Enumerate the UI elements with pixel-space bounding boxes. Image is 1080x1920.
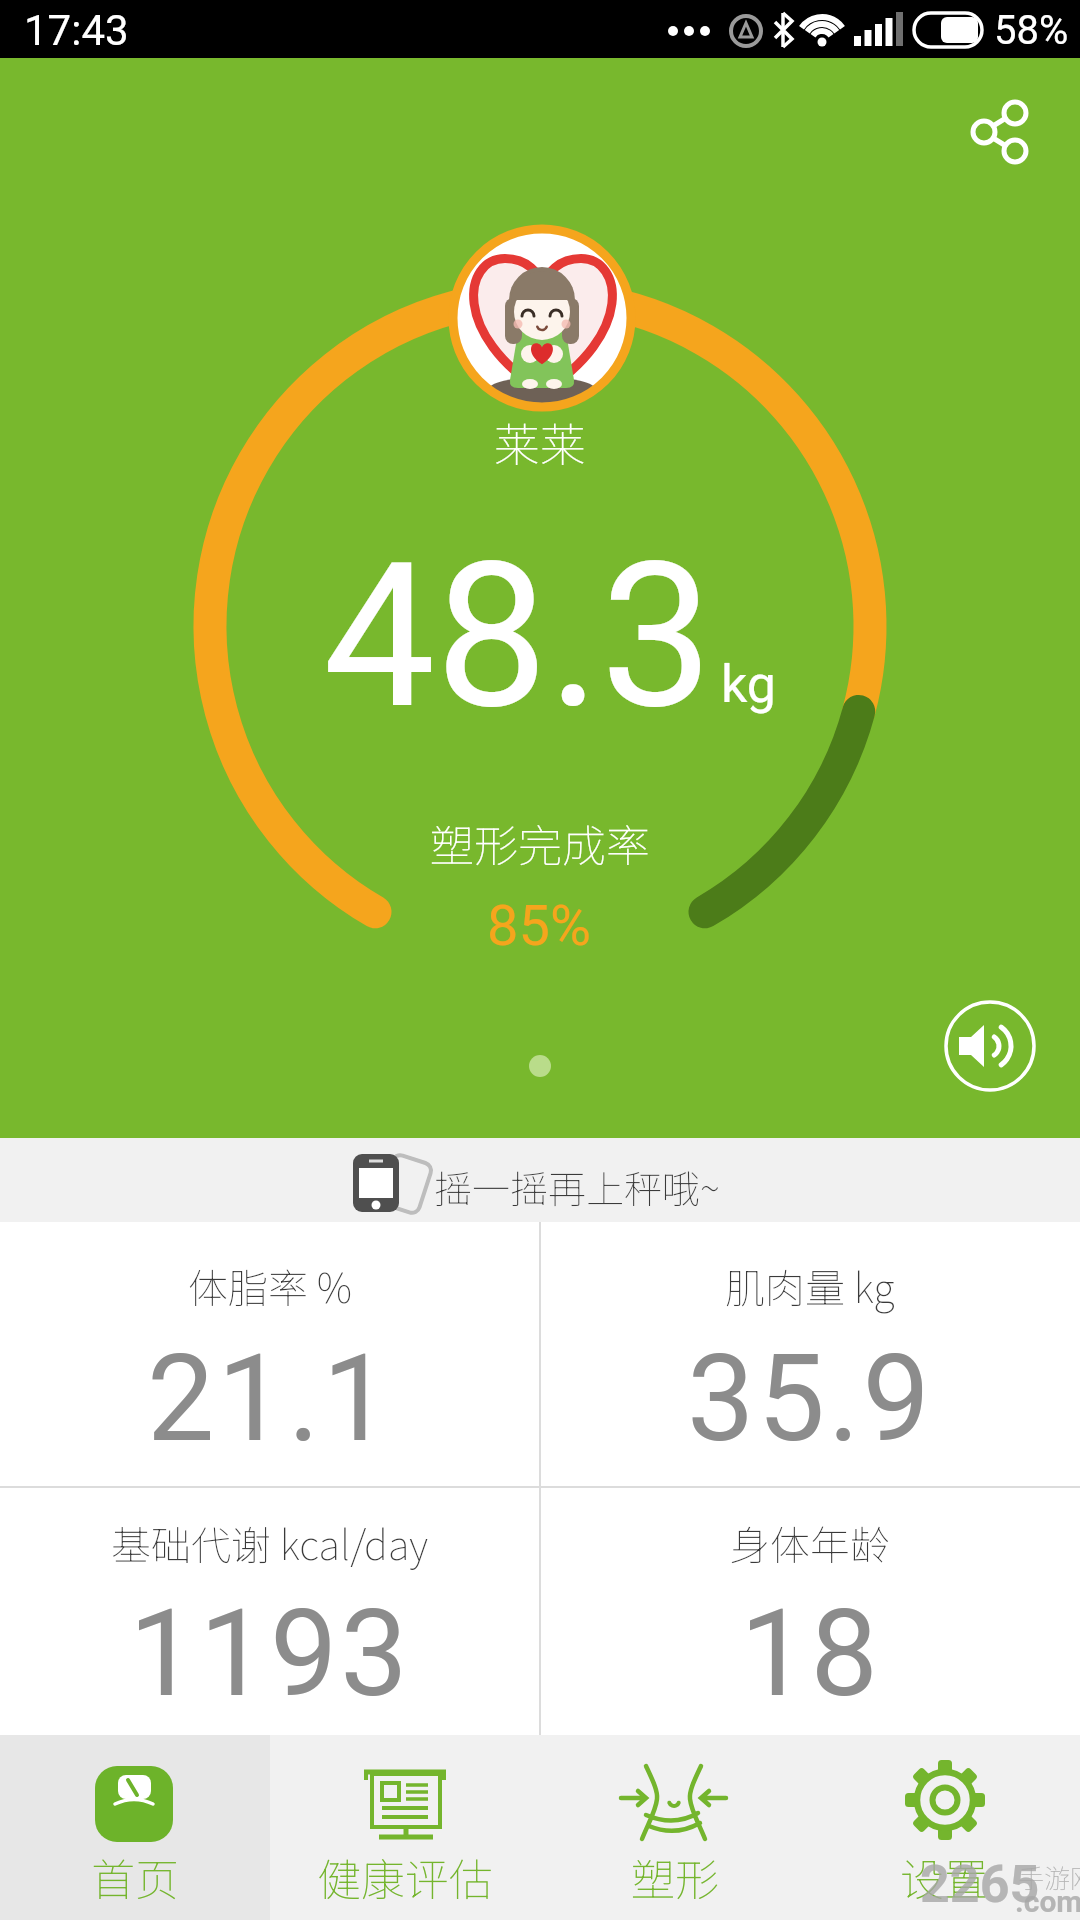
staticText: 塑形 bbox=[631, 1845, 719, 1909]
staticText: 莱莱 bbox=[494, 409, 586, 476]
staticText: 2265 bbox=[920, 1854, 1040, 1915]
staticText: 1193 bbox=[129, 1584, 411, 1725]
button[interactable] bbox=[270, 1735, 540, 1920]
staticText: 身体年龄 bbox=[730, 1514, 890, 1572]
button[interactable] bbox=[540, 1735, 810, 1920]
button[interactable] bbox=[0, 1735, 270, 1920]
staticText: .com bbox=[1015, 1884, 1080, 1919]
button[interactable] bbox=[0, 1138, 1080, 1222]
staticText: 健康评估 bbox=[317, 1845, 493, 1909]
staticText: kg bbox=[721, 654, 777, 715]
staticText: 手游网 bbox=[1018, 1858, 1080, 1896]
staticText: 摇一摇再上秤哦~ bbox=[434, 1159, 720, 1214]
staticText: 85% bbox=[487, 893, 591, 959]
staticText: 48.3 bbox=[323, 519, 713, 753]
staticText: 基础代谢 kcal/day bbox=[111, 1514, 429, 1572]
staticText: 设置 bbox=[900, 1845, 988, 1909]
staticText: 肌肉量 kg bbox=[725, 1257, 895, 1315]
staticText: 首页 bbox=[91, 1845, 179, 1909]
button[interactable] bbox=[810, 1735, 1080, 1920]
staticText: 35.9 bbox=[687, 1329, 933, 1470]
staticText: 58% bbox=[994, 7, 1069, 54]
staticText: 体脂率 % bbox=[188, 1257, 352, 1315]
staticText: 17:43 bbox=[24, 6, 129, 52]
staticText: 塑形完成率 bbox=[430, 811, 650, 875]
button[interactable] bbox=[930, 990, 1042, 1102]
staticText: 18 bbox=[740, 1584, 881, 1725]
staticText: 21.1 bbox=[147, 1329, 393, 1470]
button[interactable] bbox=[950, 80, 1060, 190]
